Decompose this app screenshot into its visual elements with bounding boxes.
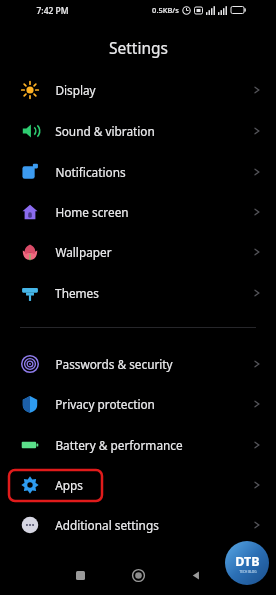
button[interactable]: Passwords & security bbox=[0, 344, 276, 384]
button[interactable]: Home bbox=[128, 565, 148, 585]
staticText: Themes bbox=[55, 285, 99, 301]
staticText: TECH BLOG bbox=[239, 570, 257, 574]
button[interactable]: Apps bbox=[0, 465, 276, 505]
staticText: Wallpaper bbox=[55, 244, 112, 260]
button[interactable]: Display bbox=[0, 70, 276, 110]
staticText: Settings bbox=[109, 37, 168, 58]
button[interactable]: Home screen bbox=[0, 192, 276, 232]
button[interactable]: Sound & vibration bbox=[0, 111, 276, 151]
button[interactable]: Back bbox=[186, 565, 206, 585]
button[interactable]: Notifications bbox=[0, 152, 276, 192]
staticText: Sound & vibration bbox=[55, 123, 155, 139]
button[interactable]: Wallpaper bbox=[0, 232, 276, 272]
staticText: Apps bbox=[55, 477, 83, 493]
staticText: 0.5KB/s bbox=[152, 5, 179, 15]
staticText: DTB bbox=[235, 553, 260, 570]
staticText: 7:42 PM bbox=[36, 5, 69, 17]
button[interactable]: Recent apps bbox=[70, 565, 90, 585]
staticText: Home screen bbox=[55, 204, 129, 220]
staticText: Privacy protection bbox=[55, 396, 155, 412]
button[interactable]: Battery & performance bbox=[0, 425, 276, 465]
button[interactable]: Additional settings bbox=[0, 505, 276, 545]
staticText: Battery & performance bbox=[55, 437, 183, 453]
staticText: Additional settings bbox=[55, 517, 159, 533]
staticText: Display bbox=[55, 82, 96, 98]
staticText: Notifications bbox=[55, 164, 126, 180]
staticText: Passwords & security bbox=[55, 356, 173, 372]
button[interactable]: Privacy protection bbox=[0, 384, 276, 424]
button[interactable]: Themes bbox=[0, 273, 276, 313]
